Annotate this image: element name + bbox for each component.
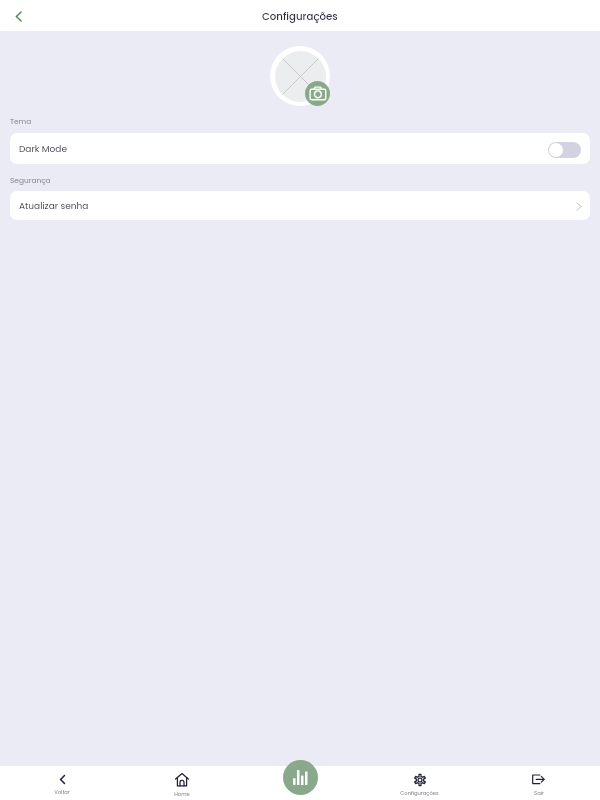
- button[interactable]: Atualizar senha: [10, 191, 590, 220]
- staticText: Configurações: [262, 9, 338, 23]
- staticText: Tema: [10, 116, 32, 126]
- staticText: Voltar: [54, 789, 70, 796]
- button[interactable]: Voltar: [2, 766, 122, 800]
- staticText: Configurações: [400, 790, 439, 797]
- staticText: Segurança: [10, 175, 51, 185]
- staticText: Sair: [534, 790, 544, 797]
- button[interactable]: Dark Mode: [548, 142, 581, 158]
- button[interactable]: Foto de perfil: [270, 46, 330, 106]
- button[interactable]: Home: [122, 766, 241, 800]
- staticText: Atualizar senha: [19, 200, 89, 213]
- staticText: Home: [174, 791, 190, 798]
- button[interactable]: Voltar: [4, 2, 32, 30]
- button[interactable]: Configurações: [360, 766, 479, 800]
- button[interactable]: Alterar foto: [305, 81, 330, 106]
- button[interactable]: Dark Mode: [10, 133, 590, 164]
- button[interactable]: Estatísticas: [283, 760, 318, 795]
- button[interactable]: Sair: [479, 766, 598, 800]
- staticText: Dark Mode: [19, 143, 68, 156]
